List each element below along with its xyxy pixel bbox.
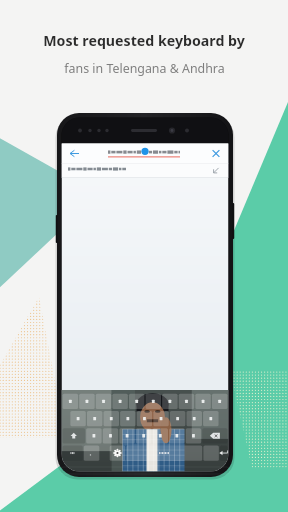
button[interactable]: Search field [82,142,202,158]
button[interactable]: Space [107,447,187,461]
button[interactable]: Suggestion [62,161,226,175]
staticText: Most requested keyboard by [43,31,245,50]
button[interactable]: Enter [204,447,228,461]
button[interactable]: Back [62,142,80,158]
button[interactable]: Keyboard settings [89,447,105,461]
button[interactable]: Close [208,142,226,158]
staticText: fans in Telengana & Andhra [64,60,225,77]
